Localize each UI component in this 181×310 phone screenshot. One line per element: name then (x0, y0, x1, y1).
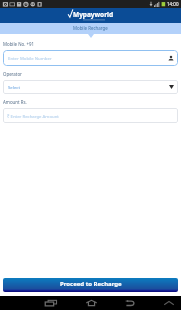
button[interactable]: Back (120, 296, 140, 310)
other: Pick contact (168, 55, 174, 62)
staticText: Mobile No. +91 (3, 41, 35, 47)
button[interactable]: Proceed to Recharge (3, 278, 178, 292)
button[interactable]: Select (3, 80, 178, 94)
staticText: Operator (3, 71, 22, 77)
button[interactable]: Enter Mobile Number (3, 50, 178, 66)
button[interactable]: Expand (159, 296, 179, 310)
staticText: Mobile Recharge (73, 25, 108, 31)
staticText: 14:00 (167, 1, 179, 7)
staticText: Amount Rs. (3, 99, 27, 105)
staticText: Select (8, 84, 20, 90)
button[interactable]: Home (81, 296, 101, 310)
button[interactable]: ₹ Enter Recharge Amount (3, 108, 178, 123)
staticText: ₹ Enter Recharge Amount (7, 113, 59, 119)
staticText: Mypayworld (73, 10, 114, 19)
staticText: Enter Mobile Number (8, 55, 52, 61)
button[interactable]: Recent apps (41, 296, 61, 310)
staticText: Proceed to Recharge (60, 280, 122, 288)
